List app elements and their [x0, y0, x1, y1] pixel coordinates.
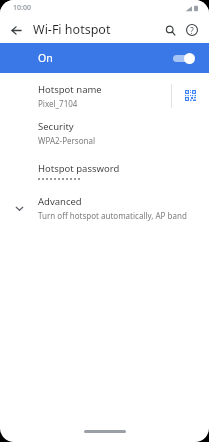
button[interactable]: Share hotspot QR code — [172, 77, 209, 114]
staticText: Advanced — [38, 195, 82, 208]
staticText: Pixel_7104 — [38, 98, 78, 109]
staticText: WPA2-Personal — [38, 135, 95, 146]
staticText: Wi-Fi hotspot — [33, 21, 111, 38]
staticText: Security — [38, 120, 74, 133]
button[interactable]: Security — [0, 114, 209, 151]
button[interactable]: Advanced — [0, 190, 209, 226]
button[interactable]: Hotspot password — [0, 151, 209, 190]
button[interactable]: Back — [5, 19, 27, 41]
staticText: Turn off hotspot automatically, AP band — [38, 210, 187, 221]
staticText: ? — [190, 25, 194, 36]
staticText: On — [38, 51, 53, 65]
button[interactable]: Hotspot name — [0, 77, 171, 114]
staticText: Hotspot name — [38, 83, 102, 96]
button[interactable]: On — [0, 43, 209, 73]
staticText: Hotspot password — [38, 162, 120, 175]
staticText: 10:00 — [13, 3, 31, 13]
button[interactable]: Help — [181, 19, 203, 41]
button[interactable]: Search — [159, 19, 181, 41]
